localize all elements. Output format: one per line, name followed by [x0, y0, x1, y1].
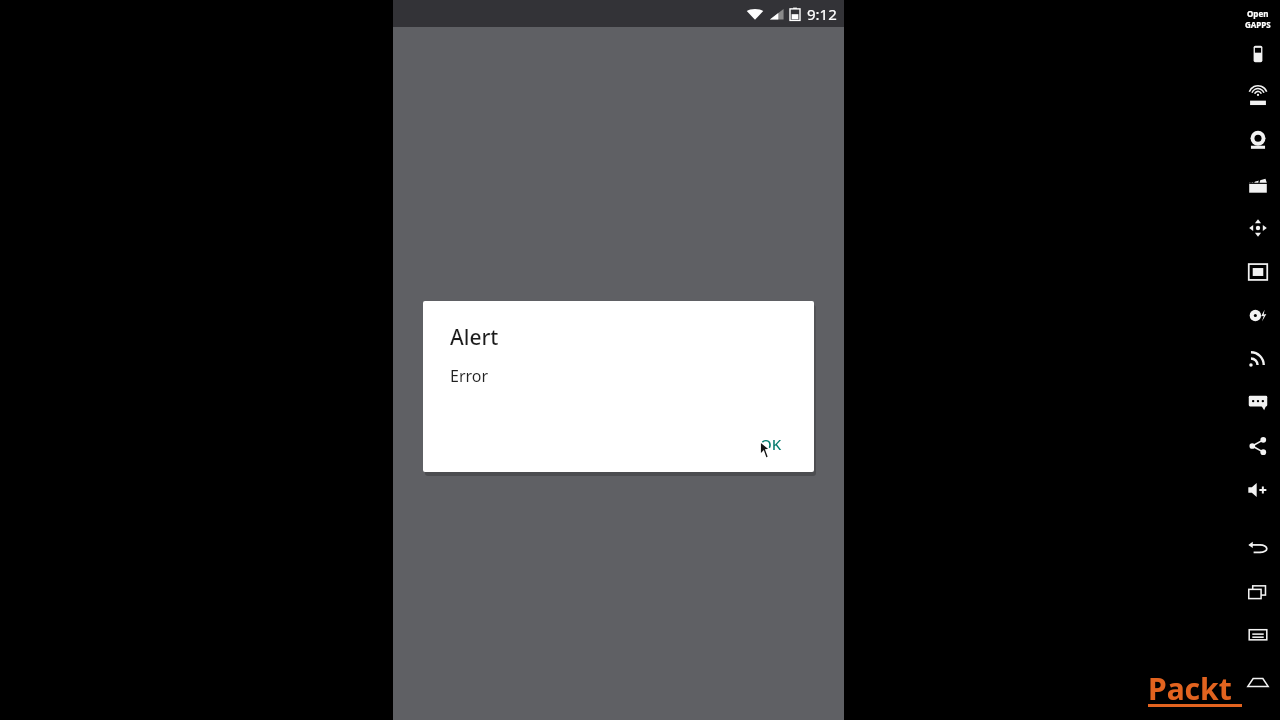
other: Packt [1148, 668, 1248, 708]
button[interactable]: OK [752, 430, 790, 458]
staticText: OK [760, 434, 782, 454]
button[interactable]: Home [1236, 669, 1280, 695]
button[interactable]: Messages [1236, 389, 1280, 415]
button[interactable]: Back [1236, 535, 1280, 561]
button[interactable]: Camera [1236, 127, 1280, 153]
button[interactable]: Share [1236, 433, 1280, 459]
staticText: Error [450, 365, 489, 387]
button[interactable]: Record screen [1236, 172, 1280, 198]
button[interactable]: Device ID [1236, 259, 1280, 285]
button[interactable]: D-pad [1236, 215, 1280, 241]
button[interactable]: Open GAPPS [1236, 8, 1280, 30]
button[interactable]: Volume up [1236, 477, 1280, 503]
staticText: Alert [450, 323, 499, 352]
button[interactable]: Snapshot [1236, 302, 1280, 328]
button[interactable]: Power / battery [1236, 41, 1280, 67]
button[interactable]: GPS [1236, 85, 1280, 111]
staticText: 9:12 [807, 4, 837, 24]
button[interactable]: Recents [1236, 579, 1280, 605]
staticText: GAPPS [1245, 19, 1271, 30]
button[interactable]: Cellular [1236, 345, 1280, 371]
staticText: Open [1247, 8, 1269, 19]
staticText: Packt [1148, 668, 1232, 708]
button[interactable]: Menu [1236, 622, 1280, 648]
